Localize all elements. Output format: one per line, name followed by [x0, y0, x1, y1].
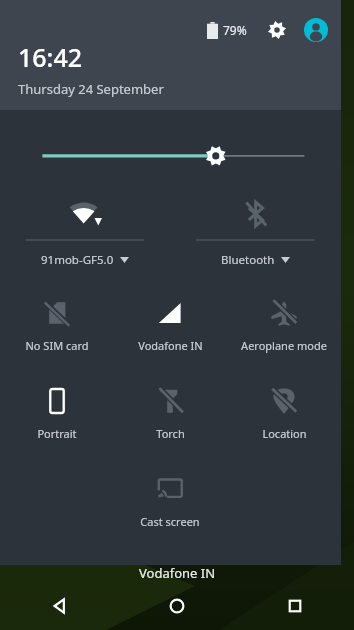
staticText: Location [262, 426, 307, 441]
staticText: Bluetooth [221, 252, 275, 268]
staticText: 91mob-GF5.0 [41, 252, 114, 268]
button[interactable]: Aeroplane mode [227, 284, 341, 372]
button[interactable]: Torch [113, 372, 227, 460]
button[interactable]: Settings [265, 18, 289, 42]
staticText: No SIM card [25, 338, 89, 353]
staticText: Cast screen [140, 514, 200, 529]
staticText: Vodafone IN [139, 564, 216, 582]
button[interactable]: Portrait [0, 372, 113, 460]
staticText: Portrait [37, 426, 77, 441]
staticText: Thursday 24 September [18, 80, 164, 98]
button[interactable]: 91mob-GF5.0 [0, 184, 170, 284]
button[interactable]: Home [118, 582, 236, 630]
button[interactable]: Recents [236, 582, 354, 630]
staticText: Vodafone IN [138, 338, 203, 353]
button[interactable]: Cast screen [113, 460, 227, 548]
button[interactable]: User profile [303, 17, 329, 43]
button[interactable]: Back [0, 582, 118, 630]
staticText: Torch [156, 426, 185, 441]
button[interactable]: No SIM card [0, 284, 113, 372]
button[interactable]: Brightness [0, 110, 341, 184]
button[interactable]: Bluetooth [170, 184, 341, 284]
staticText: Aeroplane mode [241, 338, 327, 353]
staticText: 16:42 [18, 40, 83, 74]
button[interactable]: Location [227, 372, 341, 460]
button[interactable]: Vodafone IN [113, 284, 227, 372]
staticText: 79% [223, 22, 247, 38]
